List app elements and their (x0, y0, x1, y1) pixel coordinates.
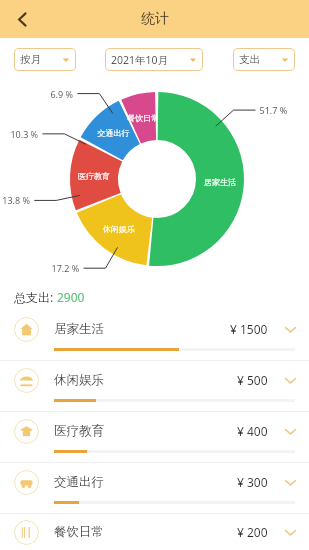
staticText: 2021年10月 (111, 53, 169, 67)
staticText: 居家生活 (54, 321, 104, 337)
staticText: ¥ 200 (237, 524, 268, 540)
staticText: 交通出行 (54, 474, 104, 490)
button[interactable]: 休闲娱乐 (0, 361, 309, 412)
staticText: 按月 (20, 53, 41, 66)
staticText: ¥ 500 (237, 372, 268, 388)
staticText: 医疗教育 (54, 423, 104, 439)
staticText: 统计 (141, 10, 169, 28)
button[interactable]: 按月 (14, 48, 76, 71)
button[interactable]: 交通出行 (0, 463, 309, 514)
button[interactable]: 医疗教育 (0, 412, 309, 463)
staticText: ¥ 400 (237, 423, 268, 439)
staticText: 总支出: (14, 289, 57, 305)
staticText: ¥ 1500 (230, 321, 268, 337)
staticText: 餐饮日常 (54, 524, 104, 540)
button[interactable]: 2021年10月 (105, 48, 203, 71)
staticText: 休闲娱乐 (54, 372, 104, 388)
staticText: 支出 (239, 53, 260, 66)
button[interactable]: 餐饮日常 (0, 514, 309, 550)
staticText: ¥ 300 (237, 474, 268, 490)
button[interactable]: Back (4, 1, 40, 37)
button[interactable]: 支出 (233, 48, 295, 71)
staticText: 2900 (57, 289, 85, 305)
button[interactable]: 居家生活 (0, 310, 309, 361)
